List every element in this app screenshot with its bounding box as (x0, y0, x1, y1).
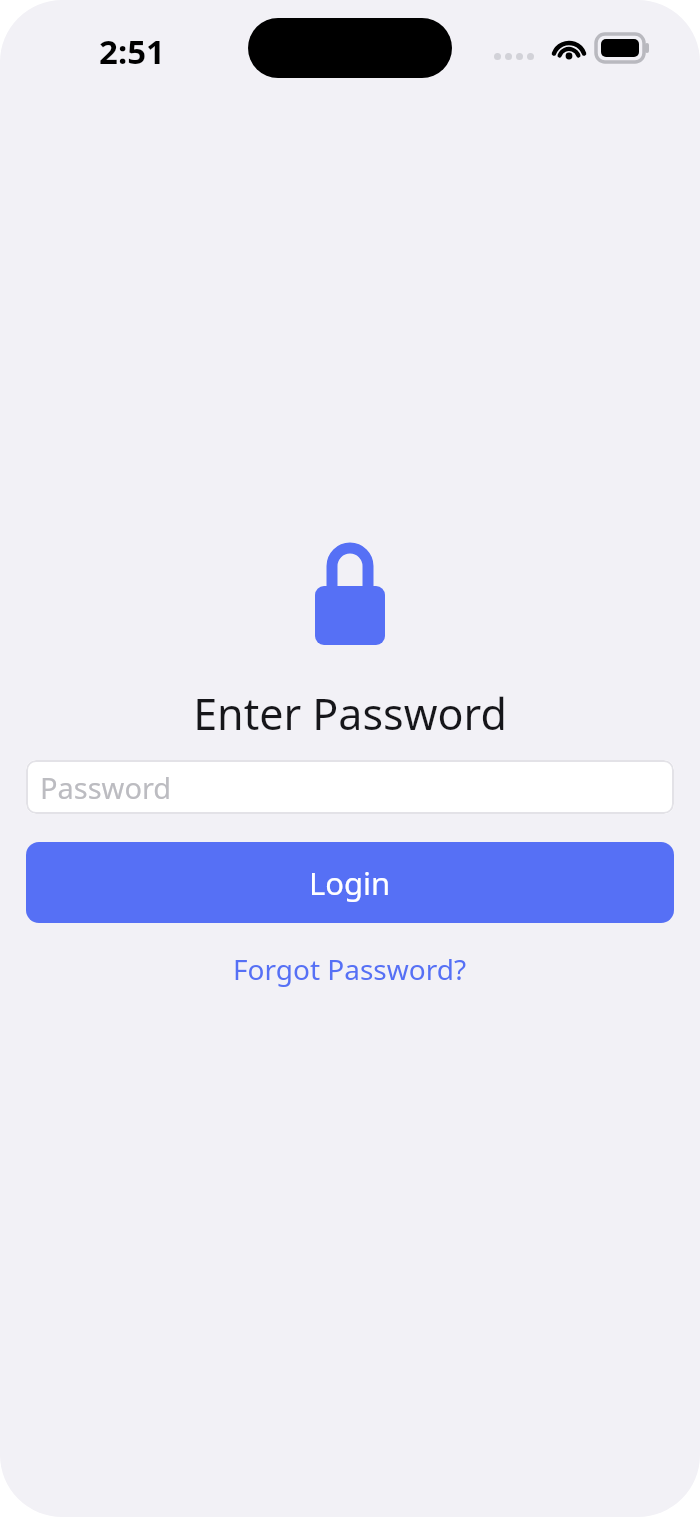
staticText: 2:51 (99, 29, 165, 74)
button[interactable]: Forgot Password? (223, 940, 477, 998)
staticText: Enter Password (193, 684, 507, 743)
staticText: Forgot Password? (233, 950, 467, 988)
other: Lock (300, 544, 400, 648)
button[interactable]: Password (26, 760, 674, 814)
staticText: Login (309, 862, 391, 904)
button[interactable]: Login (26, 842, 674, 923)
staticText: Password (40, 768, 172, 807)
